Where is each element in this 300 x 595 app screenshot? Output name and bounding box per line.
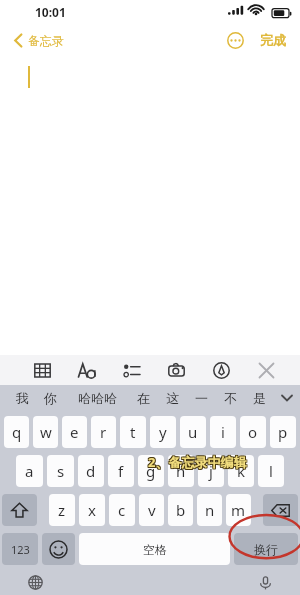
staticText: 在 bbox=[137, 390, 150, 406]
staticText: 2、备忘录中编辑 bbox=[148, 453, 247, 471]
staticText: f bbox=[118, 461, 124, 481]
button[interactable]: u bbox=[180, 416, 206, 448]
button[interactable]: 是 bbox=[245, 385, 274, 411]
staticText: d bbox=[86, 461, 96, 481]
button[interactable]: Collapse candidates bbox=[274, 385, 300, 411]
staticText: 一 bbox=[195, 390, 208, 406]
staticText: k bbox=[237, 461, 246, 481]
staticText: 我 bbox=[16, 390, 29, 406]
button[interactable]: 哈哈哈 bbox=[65, 385, 129, 411]
button[interactable]: p bbox=[270, 416, 296, 448]
button[interactable]: 我 bbox=[8, 385, 36, 411]
button[interactable]: Close bbox=[254, 358, 278, 382]
button[interactable]: j bbox=[198, 455, 224, 487]
button[interactable]: q bbox=[4, 416, 29, 448]
staticText: 这 bbox=[166, 390, 179, 406]
button[interactable]: Table bbox=[30, 358, 54, 382]
button[interactable]: Camera bbox=[164, 358, 188, 382]
button[interactable]: r bbox=[91, 416, 116, 448]
staticText: t bbox=[130, 422, 136, 442]
staticText: i bbox=[221, 422, 225, 442]
button[interactable]: s bbox=[47, 455, 74, 487]
staticText: 备忘录 bbox=[28, 33, 64, 48]
button[interactable]: Text format bbox=[74, 358, 98, 382]
staticText: p bbox=[278, 422, 288, 442]
button[interactable]: Switch keyboard bbox=[26, 573, 44, 591]
button[interactable]: 换行 bbox=[234, 533, 298, 565]
button[interactable]: Delete bbox=[263, 494, 298, 526]
staticText: 2、备忘录中编辑 bbox=[149, 452, 248, 470]
staticText: s bbox=[57, 461, 65, 481]
staticText: 2、备忘录中编辑 bbox=[147, 454, 246, 472]
staticText: h bbox=[176, 461, 186, 481]
staticText: 123 bbox=[11, 542, 30, 557]
staticText: q bbox=[12, 422, 22, 442]
button[interactable]: m bbox=[226, 494, 251, 526]
button[interactable]: 空格 bbox=[79, 533, 230, 565]
staticText: j bbox=[209, 461, 213, 481]
button[interactable]: Dictation bbox=[256, 573, 274, 591]
button[interactable]: h bbox=[168, 455, 194, 487]
button[interactable]: 一 bbox=[187, 385, 216, 411]
button[interactable]: Markup bbox=[209, 358, 233, 382]
staticText: 空格 bbox=[143, 542, 167, 557]
button[interactable]: e bbox=[62, 416, 87, 448]
staticText: 换行 bbox=[254, 542, 278, 557]
button[interactable]: d bbox=[78, 455, 104, 487]
staticText: v bbox=[148, 500, 156, 520]
staticText: c bbox=[118, 500, 126, 520]
button[interactable]: 备忘录 bbox=[0, 29, 72, 52]
staticText: e bbox=[70, 422, 79, 442]
staticText: w bbox=[40, 422, 52, 442]
staticText: 2、备忘录中编辑 bbox=[149, 454, 248, 472]
button[interactable]: n bbox=[197, 494, 222, 526]
button[interactable]: t bbox=[120, 416, 146, 448]
button[interactable]: c bbox=[109, 494, 135, 526]
button[interactable]: Emoji bbox=[42, 533, 75, 565]
button[interactable]: v bbox=[139, 494, 164, 526]
button[interactable]: 完成 bbox=[258, 28, 288, 52]
staticText: l bbox=[269, 461, 273, 481]
button[interactable]: i bbox=[210, 416, 236, 448]
button[interactable]: b bbox=[168, 494, 193, 526]
button[interactable]: 你 bbox=[36, 385, 65, 411]
staticText: n bbox=[205, 500, 215, 520]
staticText: 你 bbox=[44, 390, 57, 406]
staticText: b bbox=[176, 500, 186, 520]
staticText: a bbox=[25, 461, 34, 481]
staticText: 2、备忘录中编辑 bbox=[148, 452, 247, 470]
staticText: o bbox=[248, 422, 258, 442]
staticText: r bbox=[100, 422, 107, 442]
staticText: u bbox=[188, 422, 198, 442]
button[interactable]: f bbox=[108, 455, 134, 487]
staticText: 不 bbox=[224, 390, 237, 406]
staticText: 哈哈哈 bbox=[78, 390, 117, 406]
staticText: z bbox=[58, 500, 66, 520]
staticText: 是 bbox=[253, 390, 266, 406]
staticText: 2、备忘录中编辑 bbox=[148, 454, 247, 472]
staticText: y bbox=[159, 422, 167, 442]
button[interactable]: Shift bbox=[2, 494, 37, 526]
staticText: 完成 bbox=[260, 32, 286, 48]
button[interactable]: z bbox=[49, 494, 75, 526]
button[interactable]: l bbox=[258, 455, 284, 487]
button[interactable]: 这 bbox=[158, 385, 187, 411]
staticText: 2、备忘录中编辑 bbox=[147, 452, 246, 470]
button[interactable]: k bbox=[228, 455, 254, 487]
button[interactable]: o bbox=[240, 416, 266, 448]
button[interactable]: x bbox=[79, 494, 105, 526]
staticText: x bbox=[88, 500, 96, 520]
button[interactable]: Checklist bbox=[119, 358, 143, 382]
button[interactable]: 123 bbox=[2, 533, 38, 565]
button[interactable]: 不 bbox=[216, 385, 245, 411]
button[interactable]: 在 bbox=[129, 385, 158, 411]
button[interactable]: More options bbox=[224, 29, 246, 51]
button[interactable]: y bbox=[150, 416, 176, 448]
staticText: g bbox=[146, 461, 156, 481]
staticText: 2、备忘录中编辑 bbox=[147, 453, 246, 471]
staticText: 10:01 bbox=[35, 4, 66, 20]
button[interactable]: w bbox=[33, 416, 58, 448]
button[interactable]: a bbox=[16, 455, 43, 487]
staticText: 2、备忘录中编辑 bbox=[149, 453, 248, 471]
button[interactable]: g bbox=[138, 455, 164, 487]
